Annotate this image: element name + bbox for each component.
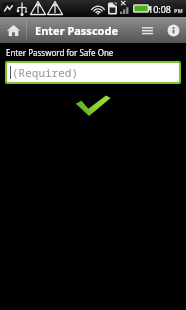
staticText: 10:08 — [148, 3, 172, 15]
button[interactable]: Home — [0, 17, 26, 43]
staticText: (Required) — [12, 65, 78, 80]
staticText: PM — [174, 7, 183, 14]
staticText: Enter Passcode — [35, 23, 118, 38]
button[interactable]: Info — [160, 17, 186, 43]
button[interactable]: (Required) — [7, 63, 179, 82]
staticText: Enter Password for Safe One — [6, 47, 114, 58]
button[interactable]: Menu — [134, 17, 160, 43]
button[interactable]: Submit passcode — [75, 95, 111, 117]
